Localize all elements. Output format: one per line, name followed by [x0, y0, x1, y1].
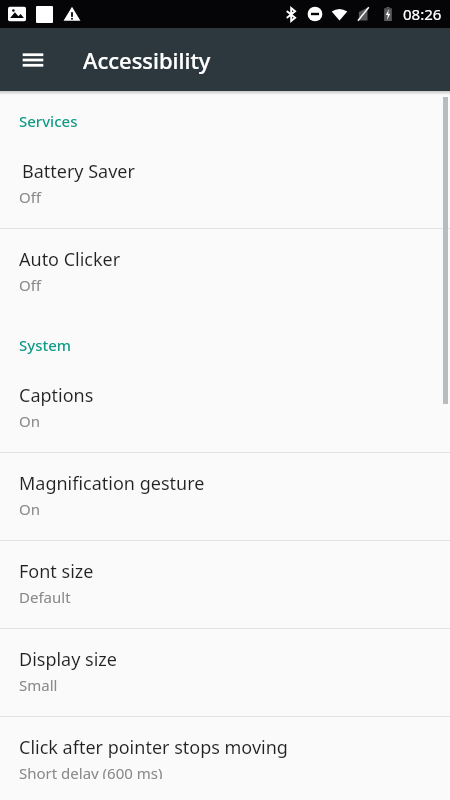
- button[interactable]: Click after pointer stops moving: [0, 717, 450, 800]
- staticText: Small: [19, 675, 58, 695]
- staticText: On: [19, 499, 40, 519]
- button[interactable]: Magnification gesture: [0, 453, 450, 540]
- button[interactable]: Open navigation menu: [9, 36, 57, 84]
- staticText: Off: [19, 187, 42, 207]
- staticText: Display size: [19, 647, 117, 672]
- button[interactable]: Font size: [0, 541, 450, 628]
- staticText: Captions: [19, 383, 94, 408]
- button[interactable]: Auto Clicker: [0, 229, 450, 316]
- staticText: 08:26: [403, 4, 442, 24]
- staticText: Default: [19, 587, 71, 607]
- staticText: Click after pointer stops moving: [19, 735, 288, 760]
- button[interactable]: Battery Saver: [0, 141, 450, 228]
- staticText: Short delay (600 ms): [19, 763, 163, 779]
- staticText: Battery Saver: [19, 159, 135, 184]
- staticText: Accessibility: [83, 45, 211, 75]
- staticText: Off: [19, 275, 42, 295]
- button[interactable]: Captions: [0, 365, 450, 452]
- button[interactable]: Display size: [0, 629, 450, 716]
- staticText: System: [19, 335, 72, 355]
- staticText: Magnification gesture: [19, 471, 205, 496]
- staticText: Auto Clicker: [19, 247, 121, 272]
- staticText: Font size: [19, 559, 94, 584]
- staticText: Services: [19, 111, 78, 131]
- staticText: On: [19, 411, 40, 431]
